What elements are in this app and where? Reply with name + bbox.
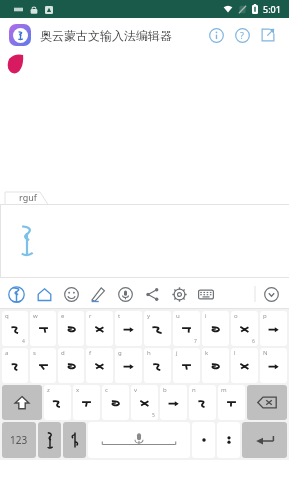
button[interactable]: Keyboard bbox=[196, 284, 216, 304]
staticText: h bbox=[147, 349, 151, 357]
button[interactable]: e bbox=[58, 311, 84, 346]
button[interactable]: c bbox=[102, 385, 129, 420]
button[interactable]: i bbox=[202, 311, 229, 346]
button[interactable]: o bbox=[231, 311, 258, 346]
button[interactable]: Home bbox=[34, 284, 54, 304]
button[interactable]: r bbox=[86, 311, 113, 346]
staticText: 5 bbox=[152, 412, 155, 419]
button[interactable]: q bbox=[2, 311, 28, 346]
button[interactable]: g bbox=[115, 348, 142, 383]
button[interactable]: Settings bbox=[169, 284, 189, 304]
button[interactable]: a bbox=[2, 348, 28, 383]
staticText: x bbox=[76, 386, 80, 394]
staticText: 4 bbox=[22, 338, 25, 345]
staticText: v bbox=[134, 386, 138, 394]
button[interactable]: v bbox=[131, 385, 158, 420]
button[interactable]: Mongolian symbol 1 bbox=[38, 422, 61, 458]
button[interactable]: 123 bbox=[2, 422, 36, 458]
staticText: l bbox=[234, 349, 236, 357]
staticText: e bbox=[61, 312, 65, 320]
button[interactable] bbox=[2, 385, 42, 420]
button[interactable]: m bbox=[218, 385, 245, 420]
button[interactable]: h bbox=[144, 348, 171, 383]
button[interactable] bbox=[16, 223, 38, 257]
button[interactable]: b bbox=[160, 385, 187, 420]
button[interactable]: s bbox=[30, 348, 56, 383]
button[interactable]: Emoji bbox=[61, 284, 81, 304]
staticText: a bbox=[5, 349, 9, 357]
staticText: 奥云蒙古文输入法编辑器 bbox=[40, 28, 172, 43]
staticText: b bbox=[163, 386, 167, 394]
staticText: 5:01 bbox=[263, 3, 281, 15]
button[interactable]: k bbox=[202, 348, 229, 383]
staticText: w bbox=[33, 312, 38, 320]
staticText: 123 bbox=[10, 433, 28, 447]
button[interactable]: App bbox=[6, 284, 26, 304]
staticText: m bbox=[221, 386, 227, 394]
button[interactable]: Enter bbox=[242, 422, 287, 458]
button[interactable]: w bbox=[30, 311, 56, 346]
button[interactable]: Share bbox=[255, 22, 281, 48]
button[interactable]: Info bbox=[203, 22, 229, 48]
staticText: ? bbox=[240, 29, 244, 41]
button[interactable]: n bbox=[189, 385, 216, 420]
staticText: n bbox=[192, 386, 196, 394]
button[interactable]: y bbox=[144, 311, 171, 346]
button[interactable]: x bbox=[73, 385, 100, 420]
button[interactable]: Space bbox=[88, 422, 190, 458]
staticText: i bbox=[205, 312, 207, 320]
button[interactable] bbox=[9, 24, 31, 46]
button[interactable]: Mongolian symbol 2 bbox=[63, 422, 86, 458]
staticText: 7 bbox=[194, 338, 197, 345]
staticText: q bbox=[5, 312, 9, 320]
button[interactable]: f bbox=[86, 348, 113, 383]
staticText: f bbox=[89, 349, 92, 357]
button[interactable]: Write bbox=[88, 284, 108, 304]
button[interactable]: rguf bbox=[6, 189, 50, 205]
button[interactable]: Colon bbox=[217, 422, 240, 458]
staticText: z bbox=[47, 386, 50, 394]
staticText: r bbox=[89, 312, 92, 320]
staticText: rguf bbox=[19, 191, 37, 203]
staticText: g bbox=[118, 349, 122, 357]
staticText: c bbox=[105, 386, 108, 394]
button[interactable]: Share bbox=[142, 284, 162, 304]
staticText: j bbox=[176, 349, 178, 357]
button[interactable]: N bbox=[260, 348, 287, 383]
button[interactable]: z bbox=[44, 385, 71, 420]
button[interactable]: d bbox=[58, 348, 84, 383]
staticText: p bbox=[263, 312, 267, 320]
button[interactable]: u bbox=[173, 311, 200, 346]
staticText: y bbox=[147, 312, 151, 320]
staticText: s bbox=[33, 349, 36, 357]
button[interactable] bbox=[247, 385, 287, 420]
button[interactable]: Period bbox=[192, 422, 215, 458]
staticText: k bbox=[205, 349, 209, 357]
button[interactable]: Collapse keyboard bbox=[261, 284, 281, 304]
staticText: o bbox=[234, 312, 238, 320]
staticText: u bbox=[176, 312, 180, 320]
button[interactable]: Help bbox=[229, 22, 255, 48]
button[interactable]: Voice bbox=[115, 284, 135, 304]
button[interactable]: p bbox=[260, 311, 287, 346]
staticText: d bbox=[61, 349, 65, 357]
staticText: 6 bbox=[252, 338, 255, 345]
button[interactable]: l bbox=[231, 348, 258, 383]
button[interactable]: j bbox=[173, 348, 200, 383]
staticText: t bbox=[118, 312, 121, 320]
button[interactable]: t bbox=[115, 311, 142, 346]
staticText: N bbox=[263, 349, 268, 357]
